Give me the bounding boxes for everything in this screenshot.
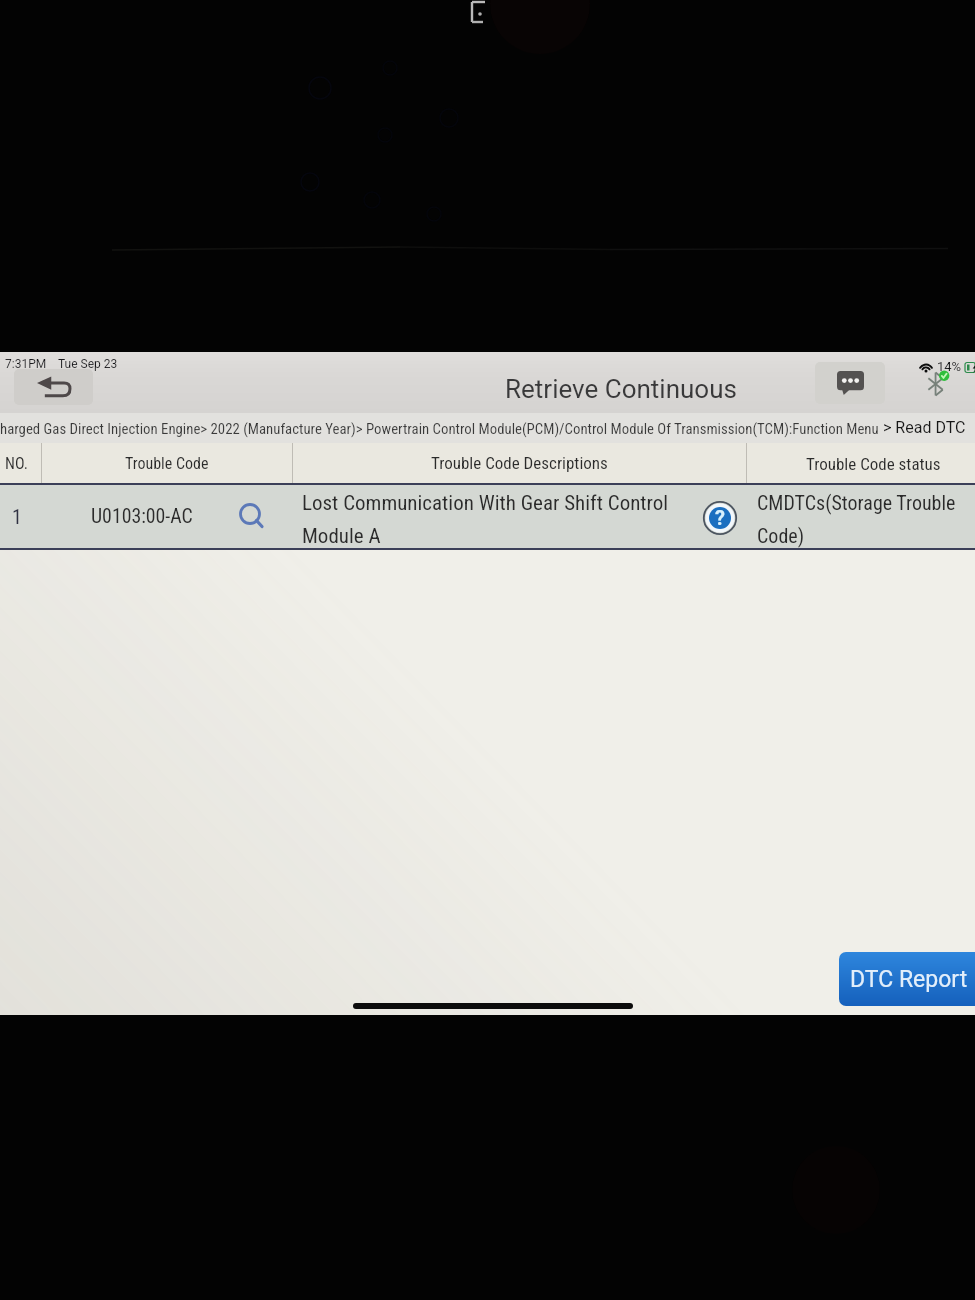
staticText: Tue Sep 23 [58,357,118,371]
staticText: DTC Report [850,966,968,993]
button[interactable]: Back [14,369,93,405]
staticText: 14% [937,359,962,374]
staticText: Retrieve Continuous [505,374,737,404]
staticText: CMDTCs(Storage Trouble [757,491,956,514]
staticText: harged Gas Direct Injection Engine> 2022… [0,420,879,437]
staticText: 1 [12,505,22,528]
button[interactable]: Messages [815,362,885,404]
staticText: Trouble Code [125,454,209,473]
staticText: U0103:00-AC [91,505,193,528]
button[interactable]: Search trouble code [236,500,266,530]
button[interactable]: Bluetooth connected [925,371,949,397]
staticText: > Read DTC [883,418,966,437]
button[interactable]: Help [703,501,737,535]
staticText: Code) [757,524,805,547]
staticText: Lost Communication With Gear Shift Contr… [302,491,669,516]
staticText: NO. [5,454,28,473]
staticText: Module A [302,524,381,549]
staticText: Trouble Code status [806,454,941,474]
button[interactable]: DTC Report [839,952,975,1006]
staticText: ? [715,506,725,529]
staticText: Trouble Code Descriptions [431,453,608,473]
staticText: 7:31PM [5,357,47,371]
